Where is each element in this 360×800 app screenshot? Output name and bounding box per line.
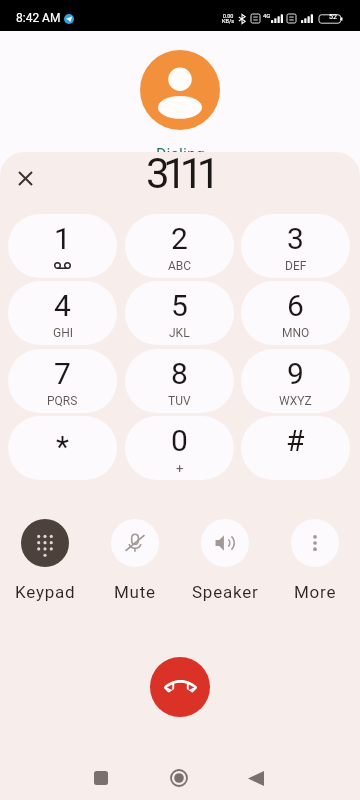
staticText: JKL bbox=[169, 326, 190, 340]
staticText: More bbox=[294, 582, 337, 602]
staticText: 3 bbox=[287, 221, 304, 256]
button[interactable]: Speaker bbox=[180, 519, 270, 602]
button[interactable]: Back bbox=[239, 761, 273, 795]
staticText: + bbox=[176, 461, 184, 476]
staticText: 7 bbox=[54, 356, 71, 391]
staticText: 52 bbox=[329, 13, 337, 21]
staticText: 3111 bbox=[146, 152, 214, 198]
button[interactable]: # bbox=[241, 416, 350, 480]
button[interactable]: 9 bbox=[241, 349, 350, 413]
staticText: PQRS bbox=[47, 394, 78, 408]
staticText: * bbox=[56, 429, 69, 464]
staticText: 4 bbox=[54, 288, 71, 323]
staticText: 5 bbox=[171, 288, 188, 323]
staticText: ABC bbox=[168, 259, 192, 273]
staticText: 0 bbox=[171, 423, 188, 458]
staticText: Dialing bbox=[156, 145, 205, 164]
staticText: 4G bbox=[263, 12, 271, 19]
staticText: DEF bbox=[285, 259, 307, 273]
button[interactable]: Backspace bbox=[7, 160, 44, 197]
staticText: WXYZ bbox=[279, 394, 312, 408]
button[interactable]: More bbox=[270, 519, 360, 602]
button[interactable]: * bbox=[8, 416, 117, 480]
staticText: GHI bbox=[53, 326, 73, 340]
staticText: 6 bbox=[287, 288, 304, 323]
button[interactable]: 0 bbox=[125, 416, 234, 480]
button[interactable]: Recent apps bbox=[84, 761, 118, 795]
button[interactable]: 3 bbox=[241, 214, 350, 278]
button[interactable]: Home bbox=[162, 761, 196, 795]
button[interactable]: 6 bbox=[241, 281, 350, 345]
button[interactable]: 1 bbox=[8, 214, 117, 278]
staticText: TUV bbox=[168, 394, 191, 408]
button[interactable]: Mute bbox=[90, 519, 180, 602]
button[interactable]: End call bbox=[150, 657, 210, 717]
button[interactable]: 5 bbox=[125, 281, 234, 345]
staticText: MNO bbox=[282, 326, 310, 340]
staticText: 9 bbox=[287, 356, 304, 391]
button[interactable]: 2 bbox=[125, 214, 234, 278]
staticText: # bbox=[286, 423, 305, 458]
staticText: Speaker bbox=[192, 582, 259, 602]
staticText: 1 bbox=[54, 221, 71, 256]
staticText: 8:42 AM bbox=[16, 11, 61, 25]
staticText: 2 bbox=[171, 221, 188, 256]
button[interactable]: 8 bbox=[125, 349, 234, 413]
staticText: Mute bbox=[114, 582, 156, 602]
button[interactable]: Keypad bbox=[0, 519, 90, 602]
button[interactable]: 7 bbox=[8, 349, 117, 413]
staticText: 0.00 KB/s bbox=[222, 13, 234, 24]
button[interactable]: 4 bbox=[8, 281, 117, 345]
staticText: Keypad bbox=[15, 582, 76, 602]
staticText: 8 bbox=[171, 356, 188, 391]
